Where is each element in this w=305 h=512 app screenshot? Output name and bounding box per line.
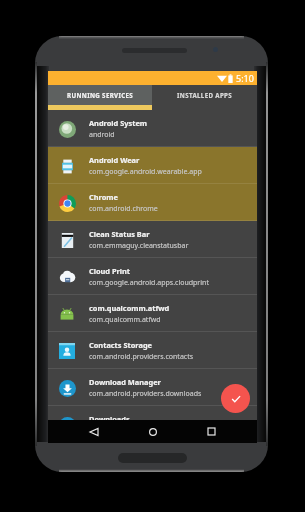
button[interactable]: Home: [141, 420, 165, 443]
button[interactable]: Back: [82, 420, 106, 443]
staticText: Download Manager: [89, 377, 161, 387]
staticText: android: [89, 130, 115, 140]
staticText: Downloads: [89, 414, 130, 424]
button[interactable]: Recents: [199, 420, 223, 443]
button[interactable]: Contacts Storage: [48, 332, 257, 369]
button[interactable]: Android Wear: [48, 147, 257, 184]
staticText: RUNNING SERVICES: [67, 91, 134, 99]
staticText: Android System: [89, 118, 147, 128]
staticText: com.android.providers.contacts: [89, 352, 194, 362]
button[interactable]: Chrome: [48, 184, 257, 221]
staticText: com.android.providers.downloads.ui: [89, 426, 210, 436]
staticText: com.google.android.wearable.app: [89, 167, 202, 177]
staticText: com.qualcomm.atfwd: [89, 315, 161, 325]
button[interactable]: Clean Status Bar: [48, 221, 257, 258]
staticText: Clean Status Bar: [89, 229, 150, 239]
staticText: com.android.providers.downloads: [89, 389, 202, 399]
staticText: Android Wear: [89, 155, 140, 165]
staticText: Cloud Print: [89, 266, 131, 276]
button[interactable]: Android System: [48, 110, 257, 147]
staticText: INSTALLED APPS: [177, 91, 233, 99]
button[interactable]: Cloud Print: [48, 258, 257, 295]
button[interactable]: INSTALLED APPS: [152, 85, 257, 105]
button[interactable]: RUNNING SERVICES: [48, 85, 152, 105]
staticText: com.emmaguy.cleanstatusbar: [89, 241, 189, 251]
button[interactable]: com.qualcomm.atfwd: [48, 295, 257, 332]
button[interactable]: Download Manager: [48, 369, 257, 406]
staticText: com.google.android.apps.cloudprint: [89, 278, 209, 288]
staticText: com.qualcomm.atfwd: [89, 303, 170, 313]
staticText: 5:10: [236, 72, 254, 84]
staticText: Chrome: [89, 192, 118, 202]
button[interactable]: Downloads: [48, 406, 257, 443]
button[interactable]: Confirm: [221, 384, 250, 413]
staticText: Contacts Storage: [89, 340, 153, 350]
staticText: com.android.chrome: [89, 204, 158, 214]
